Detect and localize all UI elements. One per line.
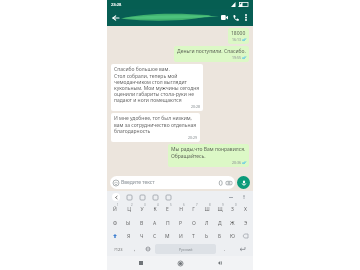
button[interactable]: А (148, 217, 161, 229)
staticText: 2 (131, 203, 133, 207)
button[interactable]: Back (110, 12, 121, 23)
staticText: Ь (205, 233, 209, 240)
button[interactable]: 0 (226, 203, 239, 216)
button[interactable]: М (161, 230, 174, 242)
button[interactable]: More (227, 193, 235, 201)
button[interactable]: Tool 1 (125, 193, 133, 201)
button[interactable]: О (187, 217, 200, 229)
button[interactable]: Э (239, 217, 252, 229)
button[interactable]: Language (141, 243, 154, 255)
staticText: И (179, 233, 183, 240)
button[interactable]: Voice input (240, 193, 248, 201)
button[interactable]: 5 (161, 203, 174, 216)
staticText: 16:13 (232, 37, 241, 42)
button[interactable]: Ч (135, 230, 148, 242)
button[interactable]: 2 (122, 203, 135, 216)
button[interactable]: Collapse toolbar (112, 193, 120, 201)
button[interactable]: Backspace (239, 230, 252, 242)
staticText: 20:36 (232, 160, 241, 165)
staticText: Введите текст (121, 179, 155, 186)
staticText: Х (244, 206, 247, 213)
button[interactable]: Video call (219, 12, 230, 23)
button[interactable]: Emoji (128, 243, 141, 255)
staticText: 9 (222, 203, 224, 207)
staticText: Л (205, 220, 209, 227)
button[interactable]: В (135, 217, 148, 229)
staticText: У (140, 206, 144, 213)
staticText: Р (179, 220, 183, 227)
button[interactable]: Д (213, 217, 226, 229)
staticText: Русский (179, 247, 193, 252)
button[interactable]: 8 (200, 203, 213, 216)
staticText: Ф (113, 220, 118, 227)
staticText: 8 (209, 203, 211, 207)
button[interactable]: Т (187, 230, 200, 242)
button[interactable]: Enter (232, 243, 252, 255)
staticText: 7 (196, 203, 198, 207)
staticText: Спасибо большое вам. Стол собрали, тепер… (114, 66, 200, 104)
staticText: П (166, 220, 170, 227)
button[interactable]: ?123 (108, 243, 128, 255)
button[interactable]: 3 (135, 203, 148, 216)
staticText: Ж (230, 220, 235, 227)
button[interactable]: Л (200, 217, 213, 229)
staticText: 3 (144, 203, 146, 207)
staticText: Ч (140, 233, 144, 240)
button[interactable]: Tool 4 (164, 193, 172, 201)
button[interactable]: Мы рады,что Вам понравился. Обращайтесь. (168, 144, 249, 167)
staticText: 1 (117, 203, 119, 207)
staticText: Ы (126, 220, 131, 227)
button[interactable]: Voice message (237, 176, 250, 189)
button[interactable]: Tool 3 (151, 193, 159, 201)
button[interactable]: Ы (122, 217, 135, 229)
staticText: З (231, 206, 234, 213)
button[interactable]: П (161, 217, 174, 229)
button[interactable]: Ж (226, 217, 239, 229)
button[interactable]: Back (214, 257, 226, 269)
button[interactable]: Р (174, 217, 187, 229)
button[interactable]: Home (174, 257, 186, 269)
button[interactable]: Recent apps (135, 257, 147, 269)
button[interactable]: 7 (187, 203, 200, 216)
button[interactable]: 18000 (228, 28, 249, 44)
staticText: Ц (127, 206, 131, 213)
staticText: Д (218, 220, 222, 227)
button[interactable]: Shift (108, 230, 122, 242)
staticText: С (153, 233, 157, 240)
staticText: Э (244, 220, 248, 227)
button[interactable]: Я (122, 230, 135, 242)
button[interactable]: Call (230, 12, 241, 23)
button[interactable]: Спасибо большое вам. Стол собрали, тепер… (111, 64, 203, 111)
staticText: И мне удобнее, тот был низким, вам за со… (114, 115, 197, 135)
button[interactable]: . (217, 243, 232, 255)
button[interactable]: И (174, 230, 187, 242)
staticText: . (224, 246, 226, 253)
staticText: Т (192, 233, 195, 240)
button[interactable]: 9 (213, 203, 226, 216)
staticText: Деньги поступили. Спасибо. (177, 48, 246, 55)
button[interactable]: И мне удобнее, тот был низким, вам за со… (111, 113, 200, 142)
button[interactable]: С (148, 230, 161, 242)
button[interactable]: Деньги поступили. Спасибо. (174, 46, 249, 62)
button[interactable]: Tool 2 (138, 193, 146, 201)
button[interactable]: Х (239, 203, 252, 216)
staticText: Е (166, 206, 169, 213)
staticText: 0 (235, 203, 237, 207)
staticText: 19:55 (232, 55, 241, 60)
staticText: Ш (204, 206, 210, 213)
button[interactable]: Ф (108, 217, 122, 229)
button[interactable]: 1 (108, 203, 122, 216)
button[interactable]: Введите текст (110, 176, 235, 189)
button[interactable]: Ь (200, 230, 213, 242)
staticText: 5 (170, 203, 172, 207)
button[interactable]: More options (241, 13, 250, 22)
button[interactable]: Русский (155, 244, 216, 254)
button[interactable]: 6 (174, 203, 187, 216)
button[interactable]: 4 (148, 203, 161, 216)
staticText: , (134, 246, 136, 253)
staticText: Ю (230, 233, 235, 240)
button[interactable]: Б (213, 230, 226, 242)
staticText: К (153, 206, 157, 213)
button[interactable]: Ю (226, 230, 239, 242)
staticText: Б (218, 233, 222, 240)
